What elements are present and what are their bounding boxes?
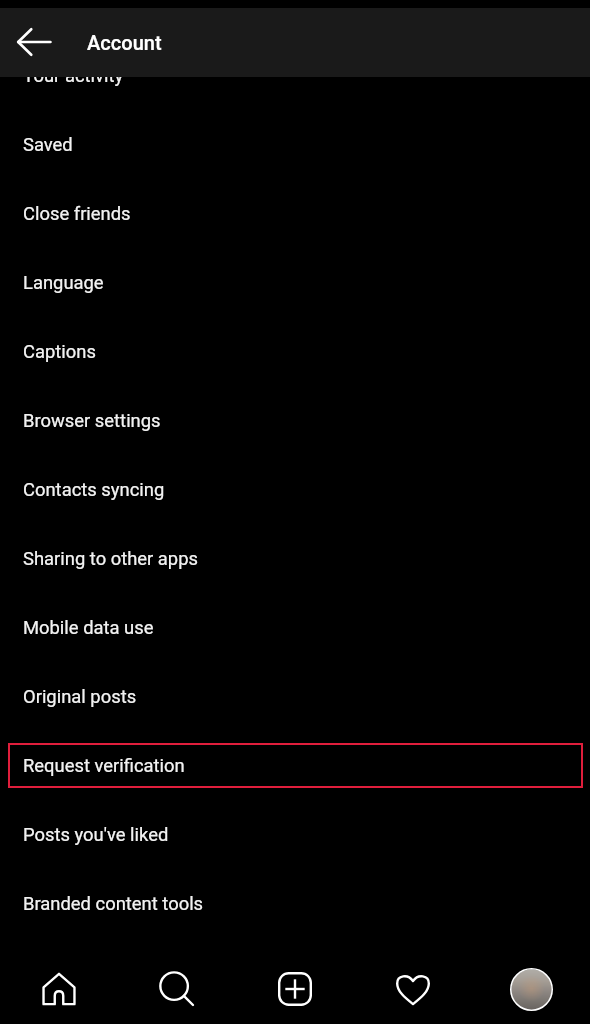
staticText: Branded content tools (23, 893, 204, 915)
button[interactable]: Request verification (0, 731, 590, 800)
button[interactable]: Your activity (0, 41, 590, 110)
button[interactable]: Home (0, 954, 118, 1024)
button[interactable]: Contacts syncing (0, 455, 590, 524)
staticText: Mobile data use (23, 617, 154, 639)
staticText: Account (87, 31, 162, 54)
staticText: Request verification (23, 755, 185, 777)
staticText: Your activity (23, 65, 124, 87)
staticText: Close friends (23, 203, 131, 225)
staticText: Captions (23, 341, 96, 363)
staticText: Saved (23, 134, 73, 156)
button[interactable]: Original posts (0, 662, 590, 731)
staticText: Posts you've liked (23, 824, 169, 846)
staticText: Original posts (23, 686, 137, 708)
button[interactable]: Captions (0, 317, 590, 386)
button[interactable]: Profile (472, 954, 590, 1024)
staticText: Language (23, 272, 104, 294)
button[interactable]: Search (118, 954, 236, 1024)
button[interactable]: Posts you've liked (0, 800, 590, 869)
button[interactable]: Sharing to other apps (0, 524, 590, 593)
staticText: Browser settings (23, 410, 161, 432)
button[interactable]: Mobile data use (0, 593, 590, 662)
button[interactable]: Language (0, 248, 590, 317)
button[interactable]: Saved (0, 110, 590, 179)
button[interactable]: Activity (354, 954, 472, 1024)
staticText: Contacts syncing (23, 479, 165, 501)
button[interactable]: Browser settings (0, 386, 590, 455)
button[interactable]: Branded content tools (0, 869, 590, 938)
staticText: Sharing to other apps (23, 548, 199, 570)
button[interactable]: Close friends (0, 179, 590, 248)
button[interactable]: Back (1, 9, 67, 75)
button[interactable]: Create (236, 954, 354, 1024)
